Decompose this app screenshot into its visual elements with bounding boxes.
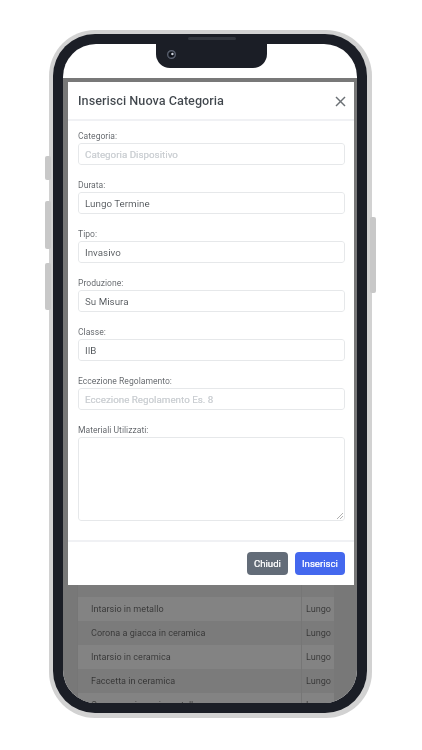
staticText: Faccetta in ceramica [91, 676, 176, 687]
button[interactable]: Corona a giacca in metallo [77, 693, 334, 703]
button[interactable]: Intarsio in metallo [77, 597, 334, 621]
button[interactable] [77, 573, 334, 597]
staticText: Lungo Termine [306, 652, 334, 663]
button[interactable]: Faccetta in ceramica [77, 669, 334, 693]
button[interactable]: Categoria Dispositivo [78, 143, 345, 165]
staticText: Inserisci Nuova Categoria [78, 93, 224, 108]
button[interactable]: Intarsio in ceramica [77, 645, 334, 669]
staticText: Tipo: [78, 229, 98, 239]
staticText: Eccezione Regolamento: [78, 376, 172, 386]
staticText: Chiudi [254, 558, 281, 569]
staticText: Categoria Dispositivo [85, 149, 178, 160]
staticText: Lungo Termine [306, 676, 334, 687]
staticText: Corona a giacca in metallo [91, 700, 199, 703]
staticText: Produzione: [78, 278, 124, 288]
staticText: Durata: [78, 180, 106, 190]
staticText: Invasivo [85, 247, 121, 258]
staticText: Materiali Utilizzati: [78, 425, 149, 435]
staticText: Intarsio in metallo [91, 604, 164, 615]
staticText: Classe: [78, 327, 106, 337]
staticText: Lungo Termine [306, 604, 334, 615]
staticText: Inserisci [302, 558, 338, 569]
staticText: Lungo Termine [85, 198, 150, 209]
button[interactable]: Lungo Termine [78, 192, 345, 214]
button[interactable]: Chiudi [247, 552, 288, 575]
button[interactable]: Inserisci [295, 552, 345, 575]
button[interactable]: IIB [78, 339, 345, 361]
button[interactable]: Invasivo [78, 241, 345, 263]
button[interactable]: Su Misura [78, 290, 345, 312]
button[interactable]: Corona a giacca in ceramica [77, 621, 334, 645]
button[interactable]: Chiudi [330, 91, 350, 111]
staticText: Lungo Termine [306, 700, 334, 703]
staticText: Intarsio in ceramica [91, 652, 171, 663]
staticText: Su Misura [85, 296, 129, 307]
staticText: Eccezione Regolamento Es. 8 [85, 394, 214, 405]
button[interactable] [78, 437, 345, 521]
staticText: Lungo Termine [306, 628, 334, 639]
staticText: Corona a giacca in ceramica [91, 628, 206, 639]
button[interactable]: Eccezione Regolamento Es. 8 [78, 388, 345, 410]
staticText: Categoria: [78, 131, 118, 141]
staticText: IIB [85, 345, 97, 356]
